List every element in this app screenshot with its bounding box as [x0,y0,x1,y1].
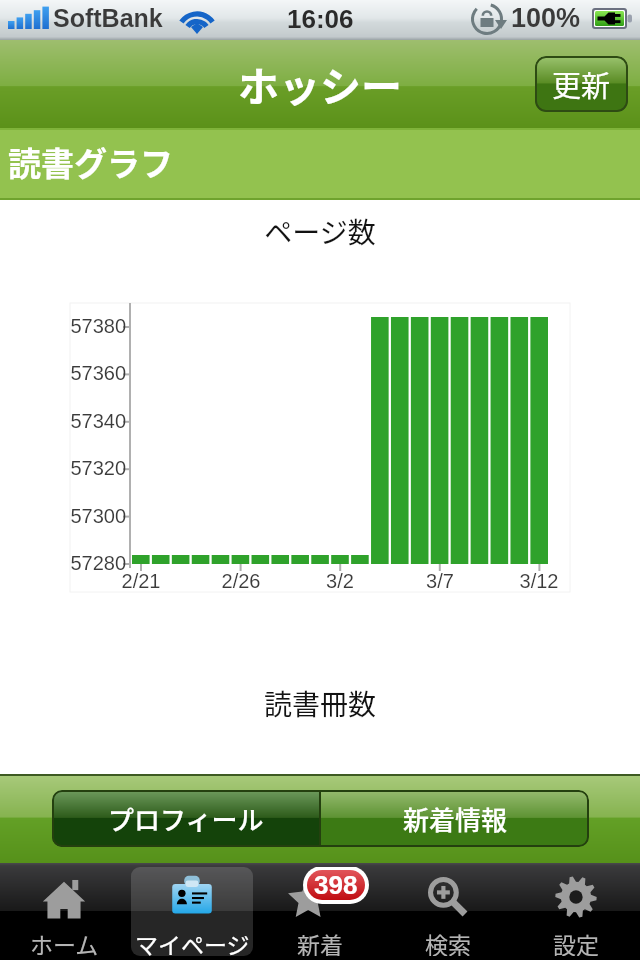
staticText: 読書グラフ [8,138,173,186]
staticText: 新着情報 [403,800,508,838]
staticText: 57380 [46,315,126,337]
staticText: 3/7 [410,570,470,592]
staticText: プロフィール [108,800,264,838]
staticText: 57320 [46,457,126,479]
staticText: 設定 [553,927,599,956]
button[interactable]: 新着情報 [321,790,589,847]
button[interactable]: プロフィール [52,790,319,847]
staticText: 100% [511,3,581,33]
button[interactable]: 設定 [515,867,637,956]
button[interactable]: 更新 [535,56,628,112]
staticText: 2/26 [211,570,271,592]
staticText: 398 [314,870,358,899]
staticText: 3/2 [310,570,370,592]
staticText: 読書冊数 [0,683,640,724]
staticText: 検索 [425,927,471,956]
button[interactable]: 検索 [387,867,509,956]
staticText: 57280 [46,552,126,574]
staticText: 57360 [46,362,126,384]
staticText: 57340 [46,410,126,432]
staticText: 57300 [46,505,126,527]
staticText: 3/12 [509,570,569,592]
staticText: 16:06 [287,4,354,33]
staticText: 2/21 [111,570,171,592]
staticText: 更新 [552,63,611,105]
staticText: ホッシー [238,54,402,113]
staticText: 新着 [297,927,343,956]
staticText: ホーム [30,927,99,956]
staticText: マイページ [135,927,250,956]
staticText: SoftBank [53,4,163,32]
button[interactable]: ホーム [3,867,125,956]
button[interactable]: マイページ [131,867,253,956]
staticText: ページ数 [0,211,640,252]
button[interactable]: 398 [259,867,381,956]
